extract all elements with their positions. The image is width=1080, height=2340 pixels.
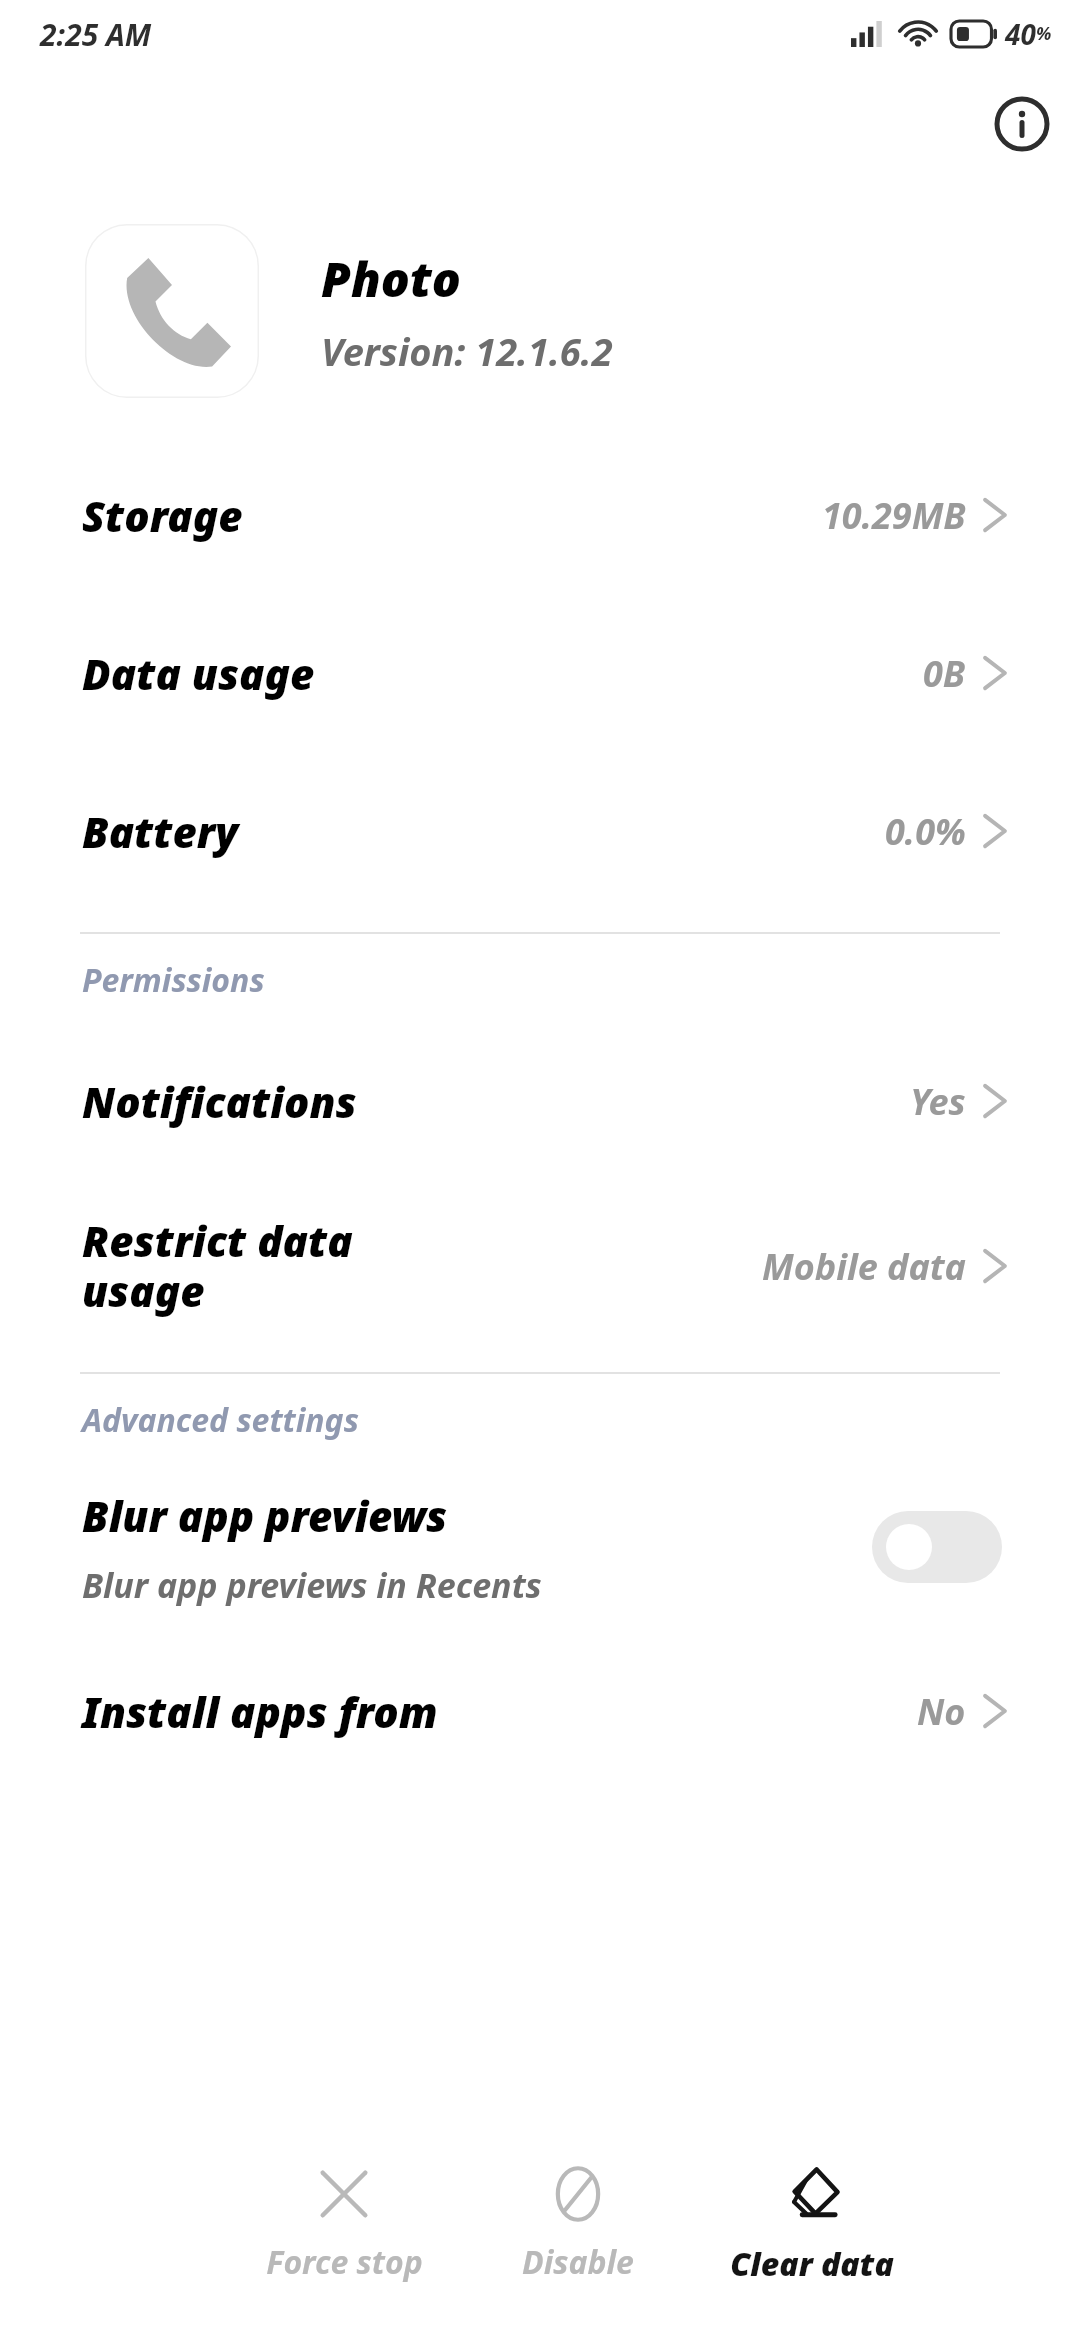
staticText: 0B: [923, 649, 966, 698]
staticText: Force stop: [266, 2240, 423, 2284]
staticText: Advanced settings: [82, 1398, 1080, 1442]
staticText: Blur app previews in Recents: [82, 1562, 542, 1608]
staticText: Battery: [82, 803, 885, 860]
staticText: Restrict data usage: [82, 1212, 762, 1320]
staticText: 2:25 AM: [40, 14, 152, 55]
button[interactable]: Clear data: [716, 2140, 908, 2286]
button[interactable]: Battery: [0, 752, 1080, 910]
staticText: %: [1036, 21, 1052, 46]
button[interactable]: Blur app previews: [0, 1462, 1080, 1632]
staticText: Storage: [82, 487, 822, 544]
staticText: Install apps from: [82, 1683, 917, 1740]
staticText: Version: 12.1.6.2: [321, 325, 613, 377]
staticText: 40: [1005, 15, 1036, 53]
button[interactable]: Disable: [482, 2140, 674, 2284]
button[interactable]: Notifications: [0, 1022, 1080, 1180]
button[interactable]: App info: [990, 92, 1054, 156]
staticText: Data usage: [82, 645, 923, 702]
button[interactable]: Restrict data usage: [0, 1180, 1080, 1352]
staticText: Mobile data: [762, 1242, 966, 1291]
staticText: Clear data: [730, 2242, 894, 2286]
staticText: 0.0%: [885, 807, 966, 856]
button[interactable]: Data usage: [0, 594, 1080, 752]
staticText: Disable: [522, 2240, 634, 2284]
button[interactable]: Install apps from: [0, 1632, 1080, 1790]
button[interactable]: Storage: [0, 436, 1080, 594]
staticText: Yes: [910, 1077, 966, 1126]
staticText: Photo: [321, 246, 461, 311]
staticText: Blur app previews: [82, 1487, 448, 1544]
staticText: Notifications: [82, 1073, 910, 1130]
button[interactable]: Force stop: [248, 2140, 440, 2284]
staticText: Permissions: [82, 958, 1080, 1002]
staticText: 10.29MB: [822, 491, 966, 540]
staticText: No: [917, 1687, 966, 1736]
